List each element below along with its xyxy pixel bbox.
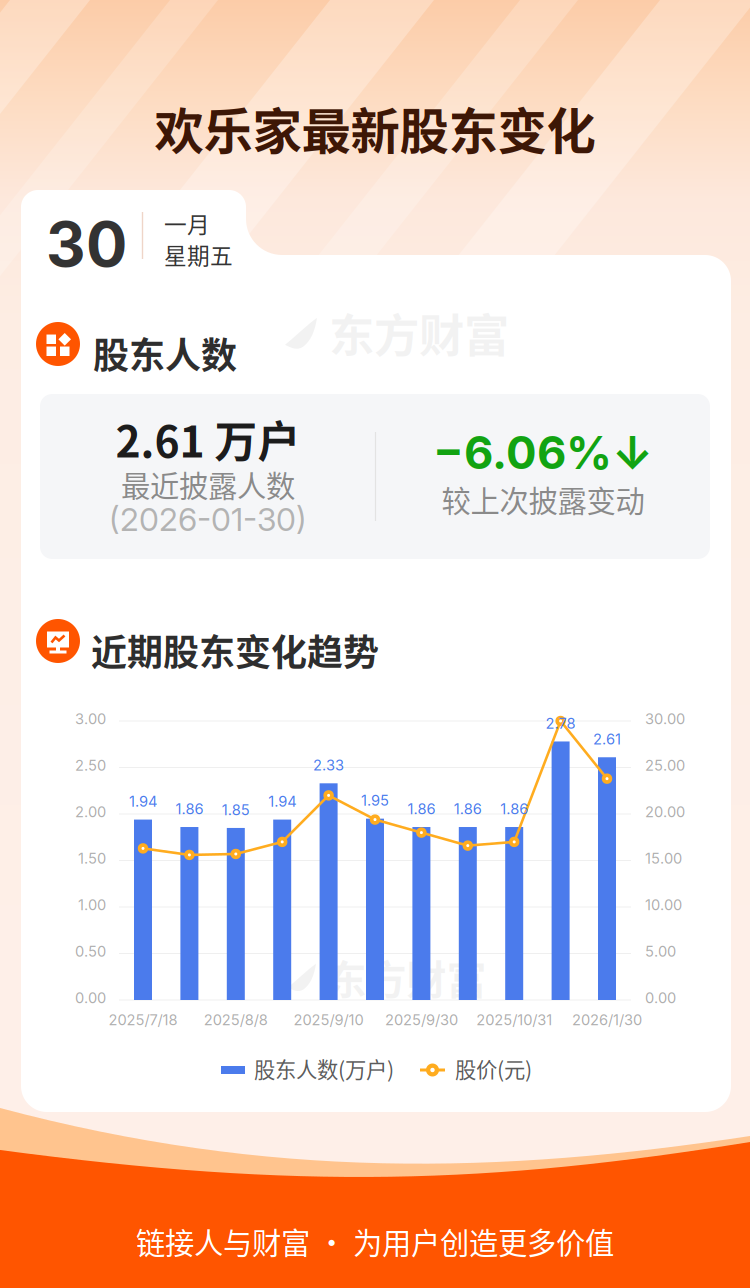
- staticText: 2.61: [593, 730, 621, 748]
- staticText: 0.00: [645, 989, 676, 1007]
- staticText: 30.00: [645, 710, 685, 728]
- staticText: 25.00: [645, 756, 685, 774]
- staticText: 2025/10/31: [476, 1011, 552, 1029]
- staticText: 一月: [164, 207, 210, 240]
- staticText: 股价(元): [455, 1053, 532, 1084]
- staticText: 0.50: [75, 942, 106, 960]
- staticText: 1.94: [268, 793, 296, 810]
- staticText: 较上次披露变动: [441, 478, 644, 520]
- staticText: 1.95: [361, 792, 389, 809]
- staticText: 5.00: [645, 942, 676, 960]
- staticText: 1.86: [407, 800, 435, 818]
- staticText: −6.06%↓: [433, 425, 653, 480]
- staticText: 1.86: [454, 800, 482, 818]
- staticText: 2.61 万户: [115, 408, 300, 470]
- staticText: 2025/9/30: [385, 1011, 458, 1029]
- staticText: 最近披露人数: [121, 463, 295, 505]
- staticText: 2.33: [313, 756, 344, 774]
- staticText: 欢乐家最新股东变化: [154, 92, 595, 163]
- staticText: 1.85: [222, 801, 250, 819]
- staticText: 2026/1/30: [572, 1011, 642, 1029]
- staticText: 1.00: [78, 896, 106, 914]
- staticText: 10.00: [645, 896, 682, 914]
- staticText: 30: [46, 207, 127, 281]
- staticText: 3.00: [75, 710, 106, 728]
- staticText: 近期股东变化趋势: [91, 624, 379, 676]
- staticText: 股东人数(万户): [254, 1053, 394, 1084]
- staticText: 星期五: [164, 238, 233, 271]
- staticText: 2.00: [75, 803, 106, 821]
- staticText: 2025/8/8: [204, 1011, 268, 1029]
- staticText: 2025/9/10: [294, 1011, 364, 1029]
- staticText: 2.50: [75, 756, 106, 774]
- staticText: 股东人数: [93, 327, 237, 379]
- staticText: 1.50: [78, 849, 106, 867]
- staticText: 链接人与财富 · 为用户创造更多价值: [136, 1220, 614, 1262]
- staticText: (2026-01-30): [109, 500, 307, 539]
- staticText: 20.00: [645, 803, 685, 821]
- staticText: 东方财富: [327, 948, 487, 1006]
- staticText: 东方财富: [329, 300, 509, 366]
- staticText: 2.78: [546, 714, 576, 732]
- staticText: 15.00: [645, 849, 682, 867]
- staticText: 0.00: [75, 989, 106, 1007]
- staticText: 1.94: [129, 793, 157, 810]
- staticText: 1.86: [500, 800, 528, 818]
- staticText: 2025/7/18: [108, 1011, 177, 1029]
- staticText: 1.86: [175, 800, 203, 818]
